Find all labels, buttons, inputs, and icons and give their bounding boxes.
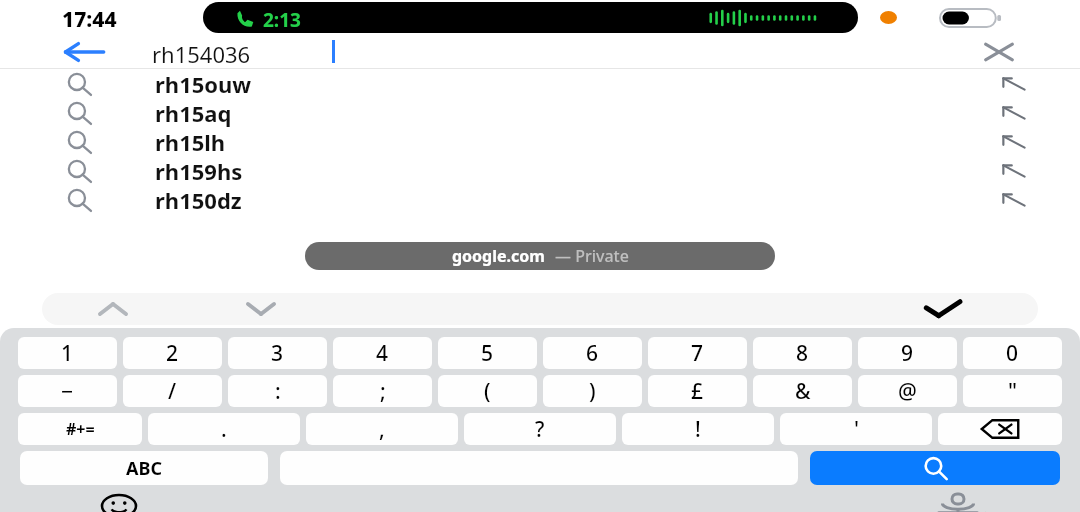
button[interactable]: rh15aq [0, 98, 1080, 127]
staticText: ? [535, 415, 545, 444]
button[interactable]: Ongoing call [203, 2, 858, 33]
button[interactable]: Done [914, 295, 970, 323]
staticText: / [168, 377, 177, 406]
staticText: 6 [586, 339, 599, 368]
button[interactable]: 2 [123, 337, 222, 369]
button[interactable]: / [123, 375, 222, 407]
button[interactable]: Search [810, 451, 1060, 485]
button[interactable]: ABC [20, 451, 268, 485]
staticText: . [221, 415, 227, 444]
staticText: rh154036 [152, 39, 251, 69]
button[interactable]: ? [464, 413, 616, 445]
button[interactable]: , [306, 413, 458, 445]
staticText: ; [380, 377, 386, 406]
button[interactable]: Clear [975, 38, 1023, 66]
button[interactable]: − [18, 375, 117, 407]
staticText: & [795, 377, 811, 406]
button[interactable]: Previous field [90, 296, 136, 322]
button[interactable]: 5 [438, 337, 537, 369]
staticText: , [379, 415, 385, 444]
button[interactable]: ' [780, 413, 932, 445]
button[interactable]: #+= [18, 413, 142, 445]
button[interactable]: & [753, 375, 852, 407]
button[interactable]: @ [858, 375, 957, 407]
staticText: 3 [271, 339, 284, 368]
staticText: ! [695, 415, 701, 444]
button[interactable]: Next field [238, 296, 284, 322]
staticText: rh150dz [155, 185, 242, 214]
button[interactable]: : [228, 375, 327, 407]
staticText: − [61, 377, 74, 406]
staticText: 17:44 [62, 5, 117, 34]
button[interactable]: ) [543, 375, 642, 407]
button[interactable]: rh150dz [0, 185, 1080, 214]
button[interactable]: 6 [543, 337, 642, 369]
staticText: 5 [481, 339, 494, 368]
button[interactable]: google.com [305, 242, 775, 270]
button[interactable]: 4 [333, 337, 432, 369]
button[interactable]: rh159hs [0, 156, 1080, 185]
staticText: 4 [376, 339, 389, 368]
button[interactable]: Emoji [84, 494, 154, 512]
button[interactable]: " [963, 375, 1062, 407]
button[interactable]: 3 [228, 337, 327, 369]
staticText: 0 [1006, 339, 1019, 368]
button[interactable]: 7 [648, 337, 747, 369]
staticText: ( [484, 377, 491, 406]
staticText: rh15aq [155, 98, 232, 127]
staticText: ' [854, 415, 859, 444]
staticText: — Private [555, 245, 629, 267]
staticText: 2:13 [263, 7, 301, 33]
staticText: 2 [166, 339, 179, 368]
button[interactable]: £ [648, 375, 747, 407]
staticText: £ [691, 377, 704, 406]
button[interactable]: ( [438, 375, 537, 407]
button[interactable]: Dictation [928, 492, 988, 512]
button[interactable]: 0 [963, 337, 1062, 369]
button[interactable]: 9 [858, 337, 957, 369]
staticText: #+= [66, 418, 95, 440]
button[interactable]: rh15ouw [0, 69, 1080, 98]
staticText: @ [898, 377, 917, 406]
button[interactable]: 8 [753, 337, 852, 369]
button[interactable]: . [148, 413, 300, 445]
button[interactable]: Back [60, 38, 106, 66]
staticText: 1 [61, 339, 74, 368]
button[interactable]: ! [622, 413, 774, 445]
staticText: rh15lh [155, 127, 226, 156]
staticText: 8 [796, 339, 809, 368]
staticText: ABC [126, 456, 162, 481]
staticText: rh15ouw [155, 69, 252, 98]
staticText: google.com [452, 245, 545, 267]
button[interactable]: ; [333, 375, 432, 407]
staticText: 9 [901, 339, 914, 368]
staticText: " [1008, 377, 1018, 406]
staticText: ) [589, 377, 596, 406]
staticText: : [275, 377, 281, 406]
button[interactable]: rh15lh [0, 127, 1080, 156]
staticText: 7 [691, 339, 704, 368]
staticText: rh159hs [155, 156, 243, 185]
button[interactable]: 1 [18, 337, 117, 369]
button[interactable]: Backspace [938, 413, 1062, 445]
